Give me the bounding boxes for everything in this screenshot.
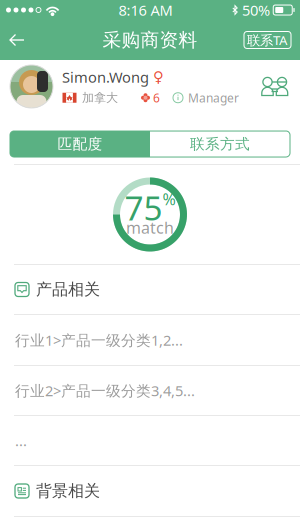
staticText: Simon.Wong [62, 67, 149, 87]
staticText: 联系TA [247, 31, 288, 49]
staticText: 6 [153, 90, 160, 106]
button[interactable]: 匹配度 [10, 131, 150, 157]
button[interactable]: Back [0, 20, 34, 60]
button[interactable]: 行业2>产品一级分类3,4,5... [0, 366, 300, 415]
staticText: 8:16 AM [118, 0, 172, 20]
button[interactable]: 联系TA [244, 20, 291, 60]
staticText: 背景相关 [36, 481, 100, 501]
button[interactable]: 行业1>产品一级分类1,2... [0, 315, 300, 365]
staticText: match [126, 217, 174, 238]
staticText: ♀ [153, 69, 164, 85]
staticText: 75 [124, 185, 162, 230]
staticText: Manager [188, 90, 239, 106]
staticText: 加拿大 [82, 90, 118, 105]
staticText: 采购商资料 [102, 28, 197, 51]
staticText: % [162, 188, 175, 210]
button[interactable]: Contacts [261, 76, 300, 96]
staticText: 产品相关 [36, 280, 100, 299]
staticText: ... [15, 431, 27, 450]
staticText: 行业2>产品一级分类3,4,5... [15, 381, 195, 400]
staticText: 50% [242, 0, 270, 20]
staticText: 行业1>产品一级分类1,2... [15, 330, 183, 350]
staticText: 联系方式 [190, 135, 250, 153]
staticText: 匹配度 [57, 135, 102, 153]
button[interactable]: 联系方式 [150, 131, 290, 157]
